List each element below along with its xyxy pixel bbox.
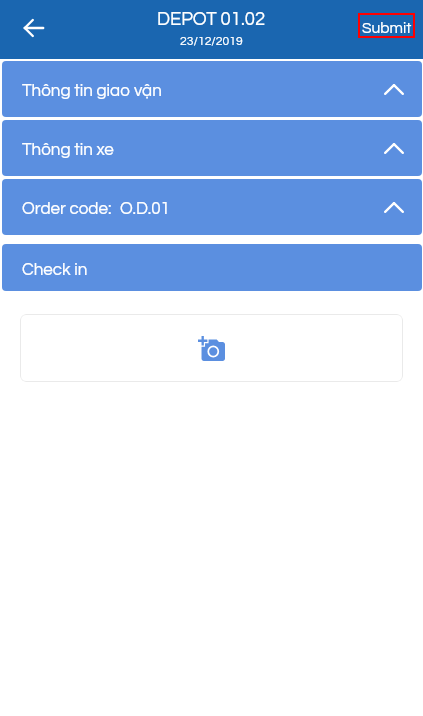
button[interactable]: Thông tin giao vận — [2, 61, 422, 117]
button[interactable]: Back — [0, 2, 56, 58]
button[interactable]: Add photo — [20, 314, 403, 382]
staticText: O.D.01 — [120, 200, 170, 218]
staticText: Order code: — [22, 200, 112, 218]
other: Collapse — [384, 84, 404, 95]
staticText: DEPOT 01.02 — [157, 10, 266, 29]
other: Collapse — [384, 202, 404, 213]
staticText: 23/12/2019 — [180, 35, 243, 48]
staticText: Thông tin giao vận — [22, 82, 162, 100]
button[interactable]: Order code: — [2, 179, 422, 235]
button[interactable]: Submit — [358, 13, 415, 38]
staticText: Check in — [22, 261, 88, 279]
staticText: Thông tin xe — [22, 141, 114, 159]
button[interactable]: Check in — [2, 244, 422, 291]
other: Collapse — [384, 143, 404, 154]
staticText: Submit — [362, 20, 412, 36]
button[interactable]: Thông tin xe — [2, 120, 422, 176]
